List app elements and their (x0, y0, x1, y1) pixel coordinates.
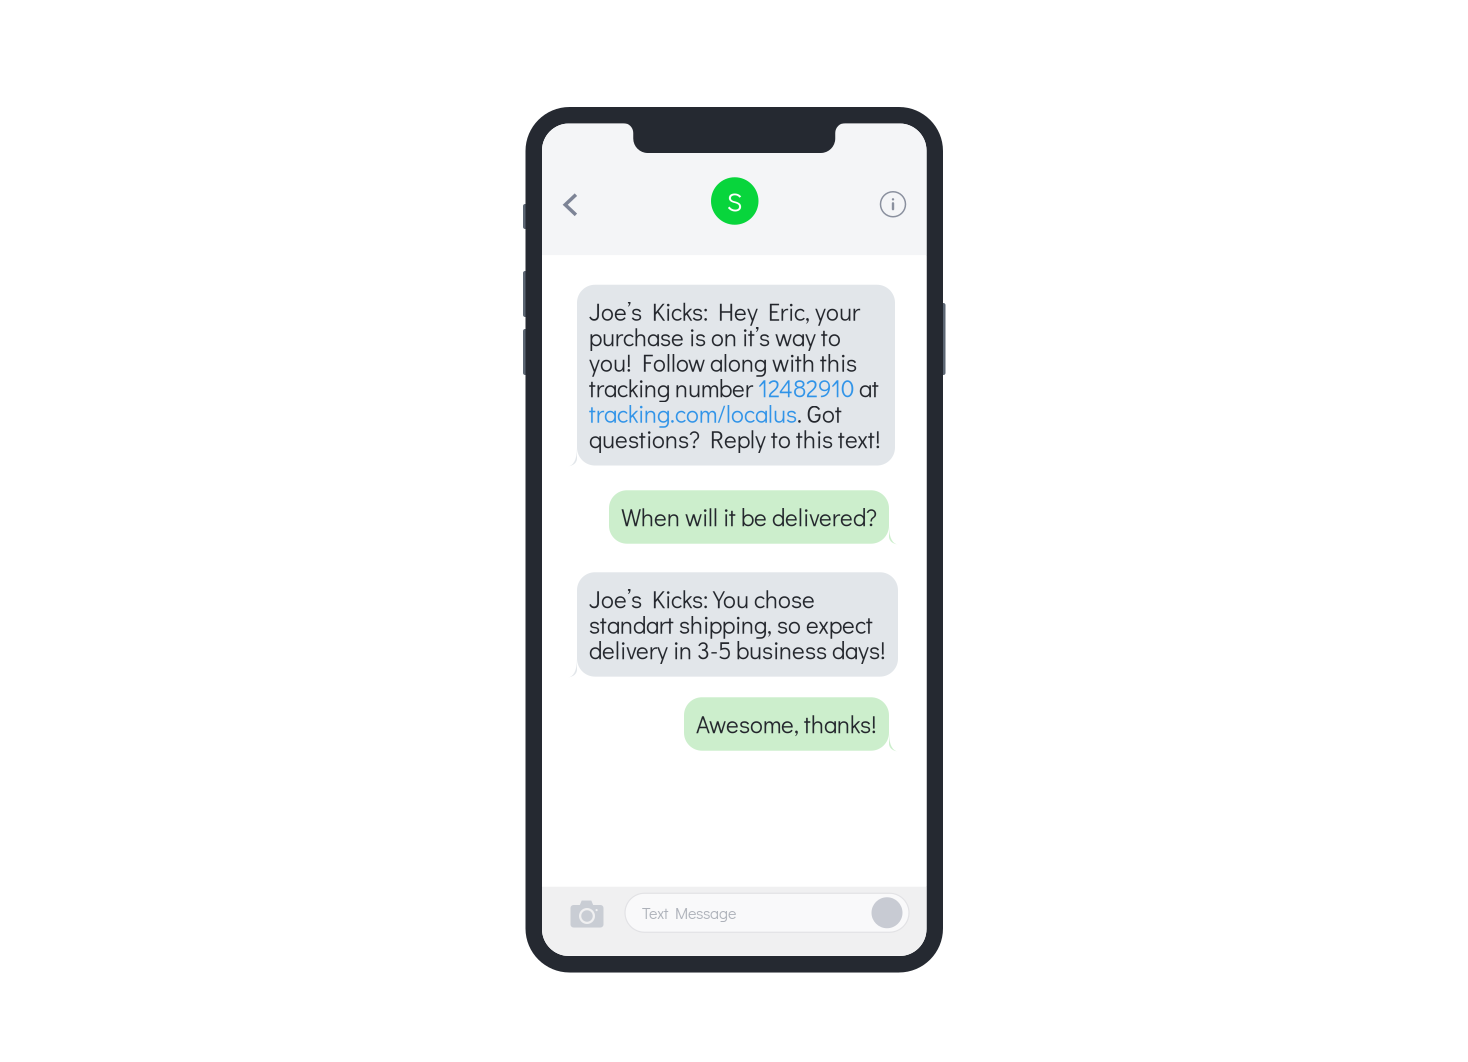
button[interactable]: Text Message (625, 893, 909, 932)
staticText: Joe’s Kicks: You chose standart shipping… (589, 583, 886, 666)
staticText: S (727, 183, 743, 218)
button[interactable]: Camera (568, 896, 606, 928)
staticText: When will it be delivered? (621, 501, 877, 533)
button[interactable]: Details (871, 182, 915, 226)
button[interactable]: Record audio message (869, 895, 904, 930)
staticText: Text Message (642, 902, 736, 923)
staticText: Joe’s Kicks: Hey Eric, your purchase is … (589, 296, 881, 455)
button[interactable]: Conversation with S (711, 177, 758, 225)
button[interactable]: Back (547, 183, 593, 227)
staticText: Awesome, thanks! (696, 708, 877, 740)
